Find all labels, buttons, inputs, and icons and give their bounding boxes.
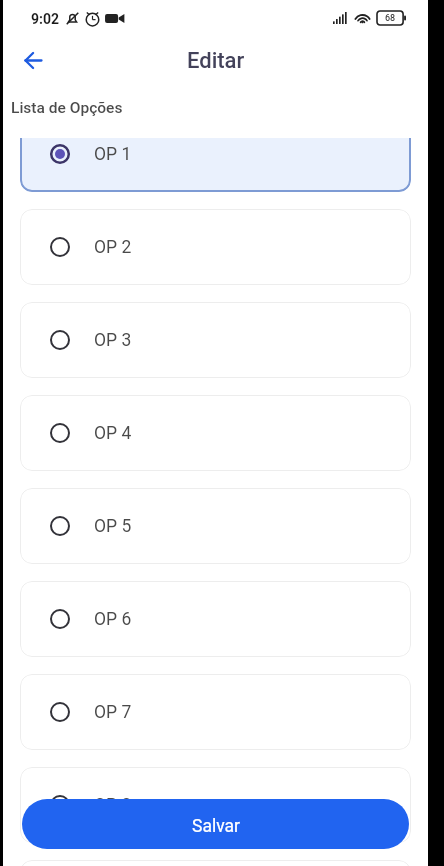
button[interactable]: OP 9 <box>20 860 411 866</box>
button[interactable]: OP 5 <box>20 488 411 564</box>
button[interactable]: OP 4 <box>20 395 411 471</box>
staticText: OP 1 <box>94 144 132 165</box>
staticText: OP 7 <box>94 702 132 723</box>
staticText: OP 6 <box>94 609 132 630</box>
staticText: OP 8 <box>94 795 132 816</box>
staticText: OP 4 <box>94 423 132 444</box>
staticText: 68 <box>385 13 396 24</box>
button[interactable]: Back <box>15 41 55 81</box>
staticText: 9:02 <box>31 11 60 27</box>
staticText: Editar <box>187 48 245 74</box>
button[interactable]: OP 6 <box>20 581 411 657</box>
button[interactable]: OP 3 <box>20 302 411 378</box>
staticText: OP 2 <box>94 237 132 258</box>
button[interactable]: OP 8 <box>20 767 411 843</box>
staticText: OP 5 <box>94 516 132 537</box>
staticText: Salvar <box>192 816 240 837</box>
staticText: OP 3 <box>94 330 132 351</box>
button[interactable]: OP 2 <box>20 209 411 285</box>
staticText: Lista de Opções <box>11 99 123 117</box>
button[interactable]: OP 7 <box>20 674 411 750</box>
button[interactable]: Salvar <box>22 799 409 849</box>
button[interactable]: OP 1 <box>20 138 411 192</box>
